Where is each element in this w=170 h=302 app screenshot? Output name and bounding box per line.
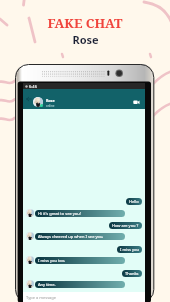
staticText: FAKE CHAT — [47, 14, 123, 32]
button[interactable]: Always cheered up when I see you. — [35, 233, 125, 240]
button[interactable]: Back — [26, 96, 32, 102]
staticText: 6:46 — [29, 84, 37, 89]
staticText: Hi it's great to see you! — [38, 211, 81, 216]
staticText: How are you ? — [112, 223, 139, 228]
staticText: Always cheered up when I see you. — [38, 234, 104, 239]
button[interactable]: Thanks — [122, 270, 142, 277]
button[interactable]: Any time. — [35, 281, 125, 288]
staticText: Rose — [46, 98, 55, 103]
button[interactable]: Hi it's great to see you! — [35, 210, 125, 217]
button[interactable]: I miss you — [117, 246, 142, 253]
staticText: online — [46, 104, 55, 108]
button[interactable]: Video call — [132, 98, 141, 107]
staticText: I miss you too. — [38, 258, 66, 263]
staticText: I miss you — [120, 247, 139, 252]
button[interactable]: How are you ? — [109, 222, 142, 229]
staticText: Any time. — [38, 282, 56, 287]
staticText: Type a message — [26, 295, 57, 300]
staticText: Thanks — [125, 271, 139, 276]
button[interactable]: I miss you too. — [35, 257, 125, 264]
button[interactable]: Hello — [126, 198, 142, 205]
staticText: Hello — [129, 199, 139, 204]
staticText: Rose — [72, 32, 99, 47]
